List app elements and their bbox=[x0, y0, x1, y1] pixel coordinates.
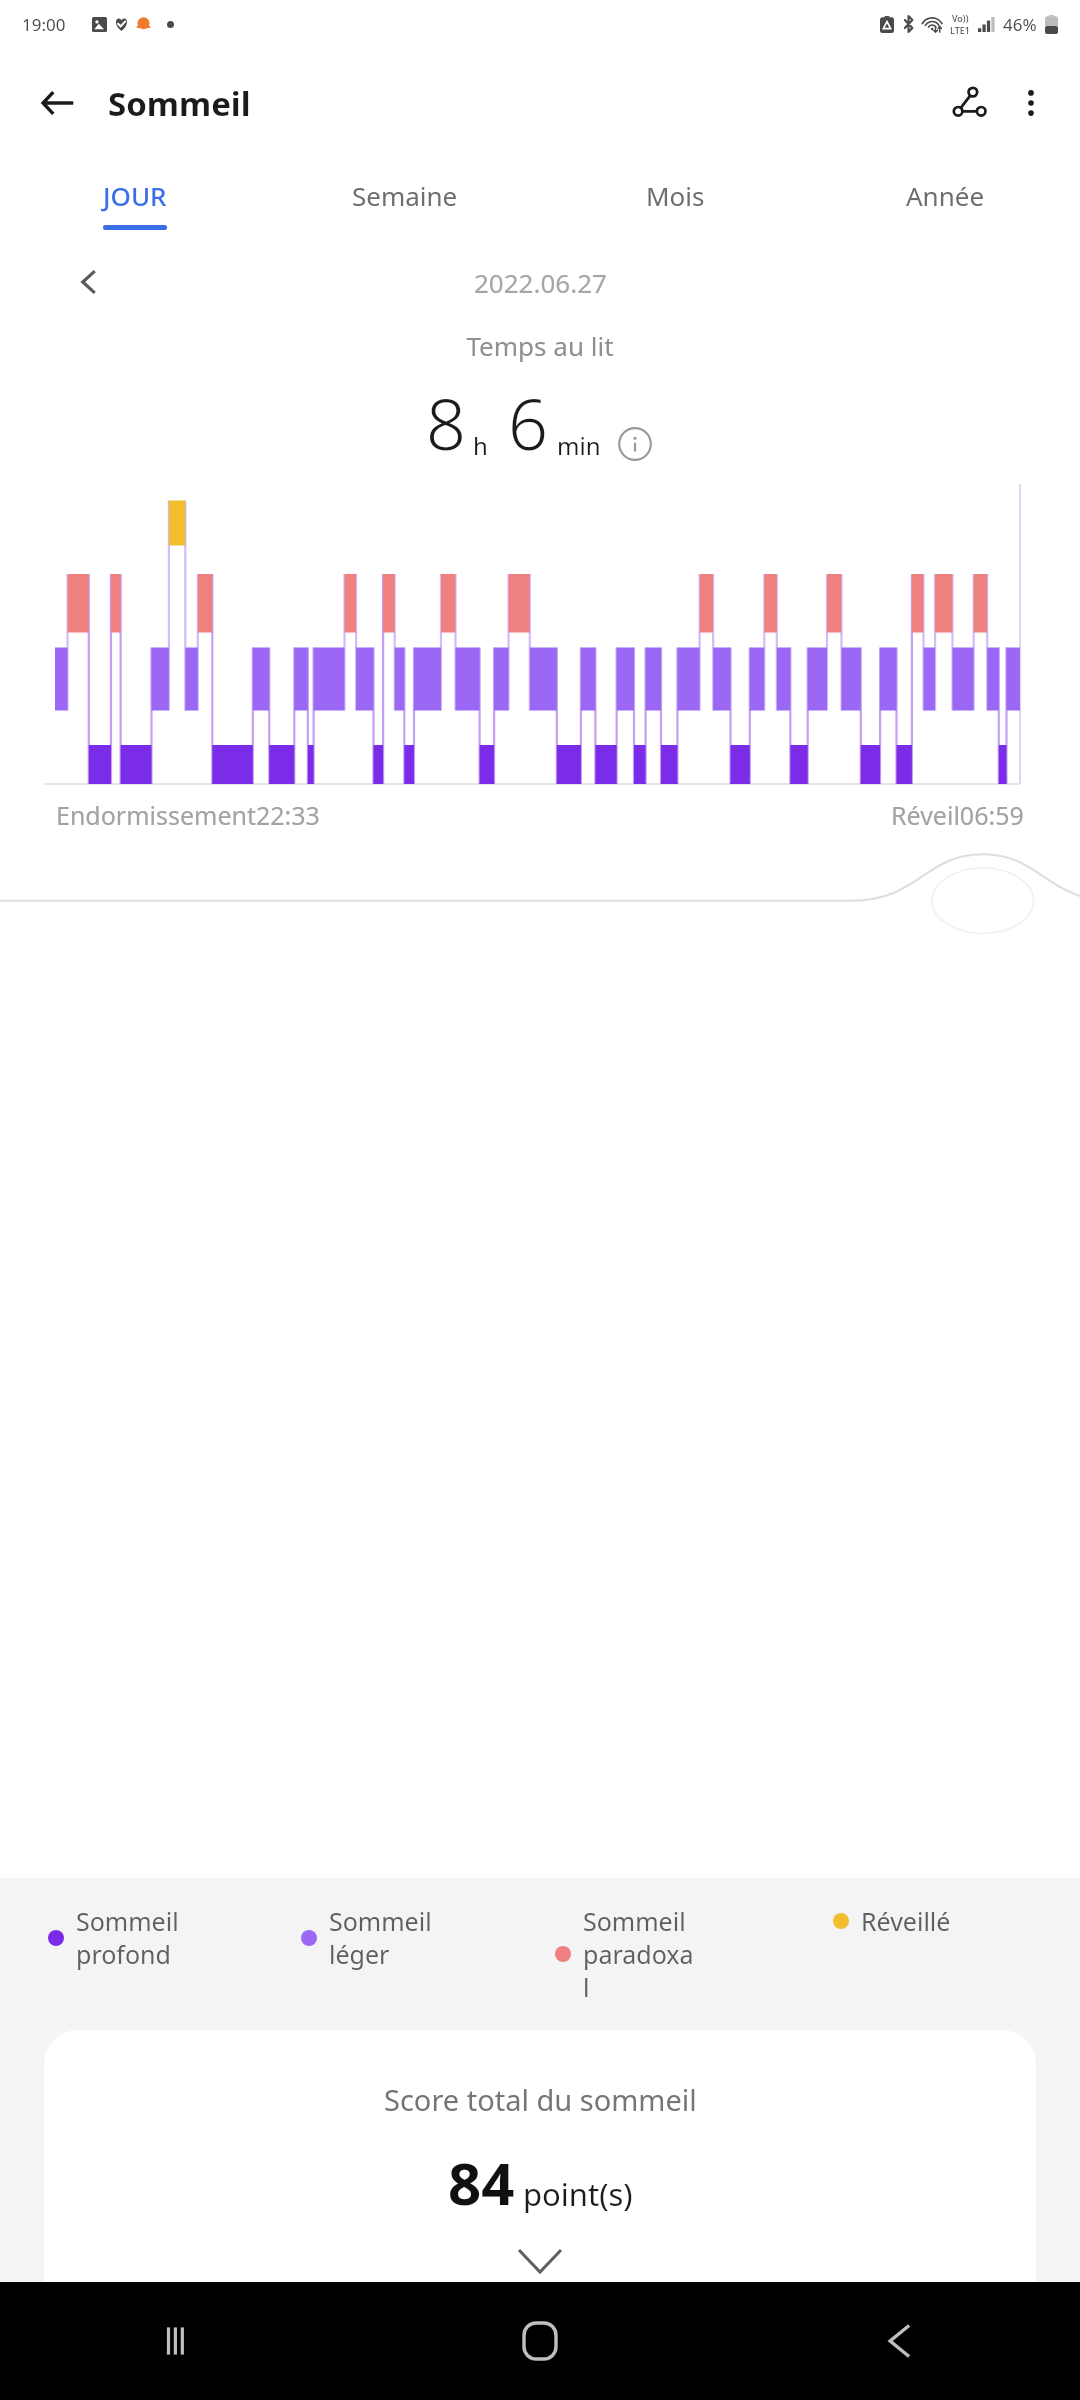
staticText: Année bbox=[906, 178, 985, 213]
button[interactable]: Mois bbox=[540, 158, 810, 250]
staticText: Sommeil bbox=[108, 81, 251, 126]
button[interactable]: JOUR bbox=[0, 158, 270, 250]
button[interactable]: Back bbox=[720, 2282, 1080, 2400]
button[interactable]: Information bbox=[615, 424, 655, 464]
staticText: Sommeil profond bbox=[76, 1904, 179, 1971]
staticText: Réveil06:59 bbox=[891, 798, 1024, 832]
staticText: point(s) bbox=[523, 2173, 633, 2215]
other: Sleep stages chart bbox=[0, 484, 1080, 784]
button[interactable]: Année bbox=[810, 158, 1080, 250]
button[interactable]: Score total du sommeil bbox=[44, 2030, 1036, 2282]
staticText: 6 bbox=[508, 375, 548, 470]
staticText: Temps au lit bbox=[0, 328, 1080, 363]
staticText: Vo)) bbox=[952, 12, 969, 24]
button[interactable]: Back bbox=[28, 73, 88, 133]
staticText: LTE1 bbox=[950, 24, 970, 36]
staticText: JOUR bbox=[103, 178, 167, 213]
staticText: min bbox=[557, 429, 601, 462]
button[interactable]: More options bbox=[1000, 72, 1062, 134]
staticText: Endormissement22:33 bbox=[56, 798, 320, 832]
staticText: 84 bbox=[448, 2143, 515, 2222]
button[interactable]: Semaine bbox=[270, 158, 540, 250]
staticText: 46% bbox=[1003, 13, 1037, 36]
button[interactable]: Share bbox=[938, 72, 1000, 134]
staticText: 2022.06.27 bbox=[474, 265, 607, 300]
staticText: Sommeil paradoxa l bbox=[583, 1904, 694, 2004]
button[interactable]: Recent apps bbox=[0, 2282, 360, 2400]
staticText: Score total du sommeil bbox=[384, 2080, 697, 2119]
staticText: 8 bbox=[426, 375, 466, 470]
button[interactable]: Home bbox=[360, 2282, 720, 2400]
staticText: Semaine bbox=[352, 178, 458, 213]
staticText: Réveillé bbox=[861, 1904, 951, 1938]
staticText: Sommeil léger bbox=[329, 1904, 432, 1971]
staticText: Mois bbox=[646, 178, 705, 213]
button[interactable]: Previous day bbox=[62, 255, 116, 309]
staticText: 19:00 bbox=[22, 13, 66, 36]
staticText: h bbox=[473, 429, 488, 462]
